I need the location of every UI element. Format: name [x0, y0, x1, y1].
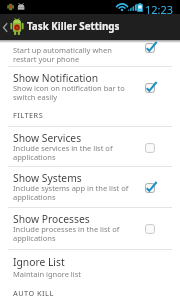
staticText: AUTO KILL — [13, 288, 54, 298]
staticText: 12:23 — [145, 2, 174, 16]
button[interactable]: Show Services — [0, 126, 180, 166]
staticText: Show Notification — [13, 71, 99, 85]
staticText: Include services in the list of applicat… — [13, 143, 113, 162]
staticText: Show icon on notification bar to switch … — [13, 83, 125, 102]
button[interactable]: Toggle Show Notification — [141, 79, 159, 97]
button[interactable]: Toggle Show Systems — [141, 179, 159, 197]
button[interactable]: Show Systems — [0, 166, 180, 206]
staticText: Task Killer Settings — [27, 20, 120, 33]
staticText: Ignore List — [13, 255, 65, 269]
staticText: Maintain ignore list — [13, 269, 82, 279]
button[interactable]: Toggle Show Services — [141, 139, 159, 157]
staticText: Start up automatically when restart your… — [13, 45, 112, 64]
button[interactable]: Toggle null — [141, 39, 159, 57]
button[interactable]: Toggle Show Processes — [141, 220, 159, 238]
button[interactable]: Show Notification — [0, 66, 180, 106]
staticText: Show Processes — [13, 212, 90, 226]
staticText: Show Systems — [13, 171, 82, 185]
button[interactable]: Show Processes — [0, 207, 180, 247]
button[interactable]: Navigate up — [0, 14, 180, 40]
staticText: Show Services — [13, 131, 82, 145]
staticText: FILTERS — [13, 110, 44, 120]
button[interactable]: Ignore List — [0, 249, 180, 289]
staticText: Include processes in the list of applica… — [13, 224, 120, 243]
button[interactable]: Start up automatically when restart your… — [0, 26, 180, 66]
staticText: Include systems app in the list of appli… — [13, 183, 129, 202]
